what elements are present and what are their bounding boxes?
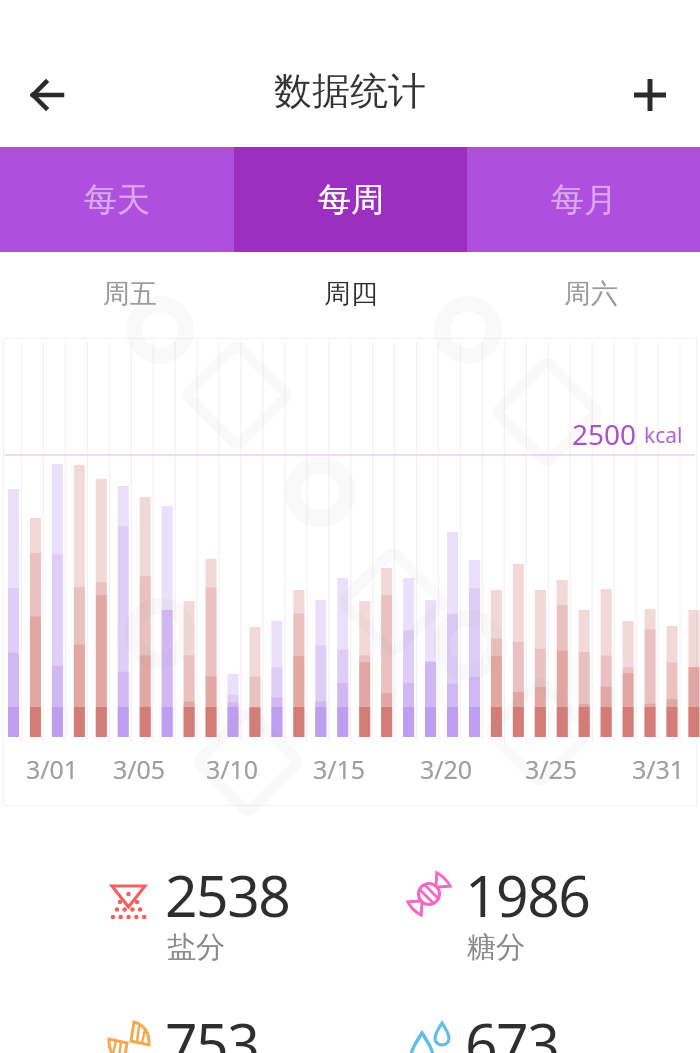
button[interactable]: 2538 — [104, 868, 384, 1008]
staticText: 周五 — [103, 277, 157, 311]
staticText: 周四 — [324, 277, 378, 311]
button[interactable]: 每天 — [0, 147, 234, 252]
staticText: 数据统计 — [274, 67, 426, 115]
staticText: 每天 — [84, 179, 150, 221]
button[interactable]: 周五 — [0, 252, 234, 336]
button[interactable]: 1986 — [404, 868, 684, 1008]
button[interactable] — [622, 67, 678, 123]
staticText: 糖分 — [467, 929, 525, 966]
staticText: 3/10 — [192, 752, 272, 786]
button[interactable]: 每周 — [234, 147, 467, 252]
staticText: 2500 — [572, 415, 637, 453]
staticText: 每周 — [318, 179, 384, 221]
staticText: 3/25 — [511, 752, 591, 786]
staticText: 753 — [165, 1004, 259, 1053]
staticText: 1986 — [465, 856, 590, 934]
staticText: 周六 — [564, 277, 618, 311]
staticText: 3/15 — [299, 752, 379, 786]
staticText: 每月 — [551, 179, 617, 221]
button[interactable]: 周六 — [467, 252, 700, 336]
button[interactable]: 673 — [404, 1016, 684, 1053]
staticText: 3/31 — [618, 752, 698, 786]
staticText: 673 — [465, 1004, 559, 1053]
staticText: 3/01 — [12, 752, 92, 786]
staticText: 2538 — [165, 856, 290, 934]
button[interactable]: 753 — [104, 1016, 384, 1053]
staticText: kcal — [644, 421, 683, 450]
staticText: 3/05 — [99, 752, 179, 786]
button[interactable]: 周四 — [234, 252, 467, 336]
staticText: 盐分 — [167, 929, 225, 966]
button[interactable] — [18, 67, 74, 123]
button[interactable]: 每月 — [467, 147, 700, 252]
staticText: 3/20 — [406, 752, 486, 786]
